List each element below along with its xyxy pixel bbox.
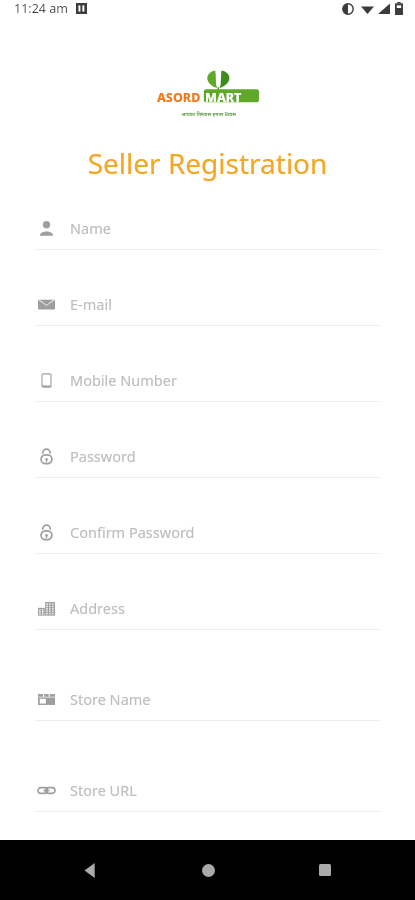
button[interactable]: Address <box>0 595 415 686</box>
button[interactable]: Back <box>63 843 117 897</box>
staticText: Seller Registration <box>0 144 415 182</box>
staticText: MART <box>205 89 242 106</box>
button[interactable]: Name <box>0 215 415 291</box>
staticText: Store URL <box>70 780 137 800</box>
button[interactable]: Home <box>181 843 235 897</box>
button[interactable]: Mobile Number <box>0 367 415 443</box>
staticText: ASORD <box>157 89 201 106</box>
staticText: Store Name <box>70 689 151 709</box>
staticText: Address <box>70 598 125 618</box>
button[interactable]: Store URL <box>0 777 415 840</box>
staticText: Mobile Number <box>70 370 177 390</box>
button[interactable]: Store Name <box>0 686 415 777</box>
button[interactable]: E-mail <box>0 291 415 367</box>
button[interactable]: Recent apps <box>298 843 352 897</box>
staticText: E-mail <box>70 294 112 314</box>
button[interactable]: Password <box>0 443 415 519</box>
button[interactable]: Confirm Password <box>0 519 415 595</box>
staticText: आपका विश्वास हमारा प्रयास <box>181 110 236 117</box>
staticText: Password <box>70 446 136 466</box>
staticText: Confirm Password <box>70 522 195 542</box>
staticText: Name <box>70 218 111 238</box>
staticText: 11:24 am <box>14 0 68 17</box>
